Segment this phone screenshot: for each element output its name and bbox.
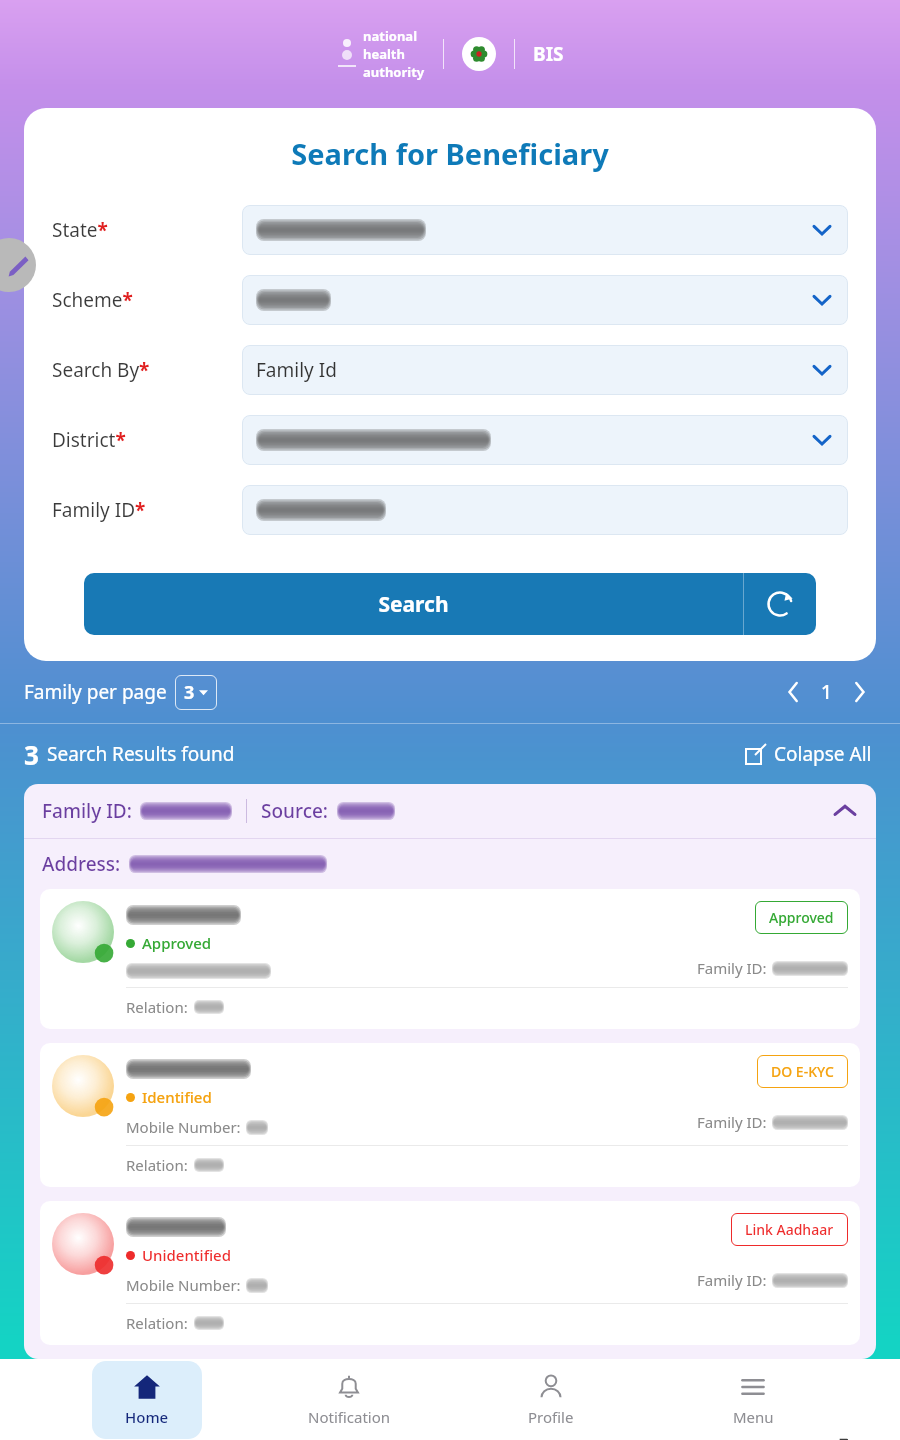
button[interactable]: Profile bbox=[496, 1361, 606, 1439]
button[interactable]: Colapse All bbox=[742, 737, 876, 771]
staticText: Home bbox=[125, 1407, 169, 1427]
staticText: health bbox=[363, 45, 405, 63]
button[interactable]: Family Id bbox=[242, 345, 848, 395]
staticText: Relation: bbox=[126, 1155, 188, 1175]
button[interactable]: Menu bbox=[698, 1361, 808, 1439]
staticText: Profile bbox=[528, 1407, 574, 1427]
button[interactable]: DO E-KYC bbox=[757, 1055, 848, 1088]
staticText: 3 bbox=[184, 680, 195, 705]
staticText: Mobile Number: bbox=[126, 1117, 241, 1137]
button[interactable] bbox=[242, 415, 848, 465]
staticText: national bbox=[363, 27, 418, 45]
button[interactable]: Unidentified bbox=[40, 1201, 860, 1345]
staticText: Approved bbox=[142, 933, 212, 953]
button[interactable] bbox=[242, 275, 848, 325]
staticText: Notification bbox=[308, 1407, 391, 1427]
staticText: Family ID: bbox=[697, 1270, 767, 1290]
staticText: Link Aadhaar bbox=[745, 1220, 834, 1239]
staticText: Mobile Number: bbox=[126, 1275, 241, 1295]
staticText: Family Id bbox=[256, 357, 337, 383]
button[interactable]: Link Aadhaar bbox=[731, 1213, 848, 1246]
staticText: Family ID: bbox=[697, 958, 767, 978]
staticText: authority bbox=[363, 63, 425, 81]
staticText: District* bbox=[52, 427, 242, 453]
staticText: Source: bbox=[261, 798, 329, 824]
button[interactable]: Home bbox=[92, 1361, 202, 1439]
staticText: Family ID* bbox=[52, 497, 242, 523]
button[interactable]: Next page bbox=[842, 675, 876, 709]
staticText: Search Results found bbox=[47, 741, 235, 767]
staticText: DO E-KYC bbox=[771, 1062, 834, 1081]
button[interactable]: Reset bbox=[744, 573, 816, 635]
staticText: Search for Beneficiary bbox=[24, 134, 876, 173]
button[interactable] bbox=[242, 205, 848, 255]
staticText: Family ID: bbox=[697, 1112, 767, 1132]
staticText: Scheme* bbox=[52, 287, 242, 313]
staticText: Unidentified bbox=[142, 1245, 231, 1265]
button[interactable]: Edit bbox=[0, 238, 36, 292]
button[interactable]: Approved bbox=[755, 901, 848, 934]
staticText: Relation: bbox=[126, 1313, 188, 1333]
staticText: Address: bbox=[42, 851, 121, 877]
button[interactable]: Search bbox=[84, 573, 816, 635]
button[interactable]: Notification bbox=[294, 1361, 404, 1439]
staticText: State* bbox=[52, 217, 242, 243]
button[interactable]: Previous page bbox=[777, 675, 811, 709]
staticText: 1 bbox=[821, 679, 832, 705]
staticText: BIS bbox=[533, 41, 564, 67]
button[interactable]: Identified bbox=[40, 1043, 860, 1187]
staticText: Approved bbox=[769, 908, 834, 927]
staticText: Identified bbox=[142, 1087, 212, 1107]
staticText: Search By* bbox=[52, 357, 242, 383]
button[interactable]: Approved bbox=[40, 889, 860, 1029]
staticText: Family ID: bbox=[42, 798, 132, 824]
staticText: Colapse All bbox=[774, 741, 872, 767]
button[interactable]: 3 bbox=[175, 675, 217, 710]
staticText: Relation: bbox=[126, 997, 188, 1017]
staticText: Menu bbox=[733, 1407, 774, 1427]
staticText: Family per page bbox=[24, 679, 167, 705]
staticText: 3 bbox=[24, 737, 39, 772]
staticText: Search bbox=[84, 590, 743, 619]
button[interactable]: Family ID: bbox=[42, 784, 858, 838]
button[interactable] bbox=[242, 485, 848, 535]
